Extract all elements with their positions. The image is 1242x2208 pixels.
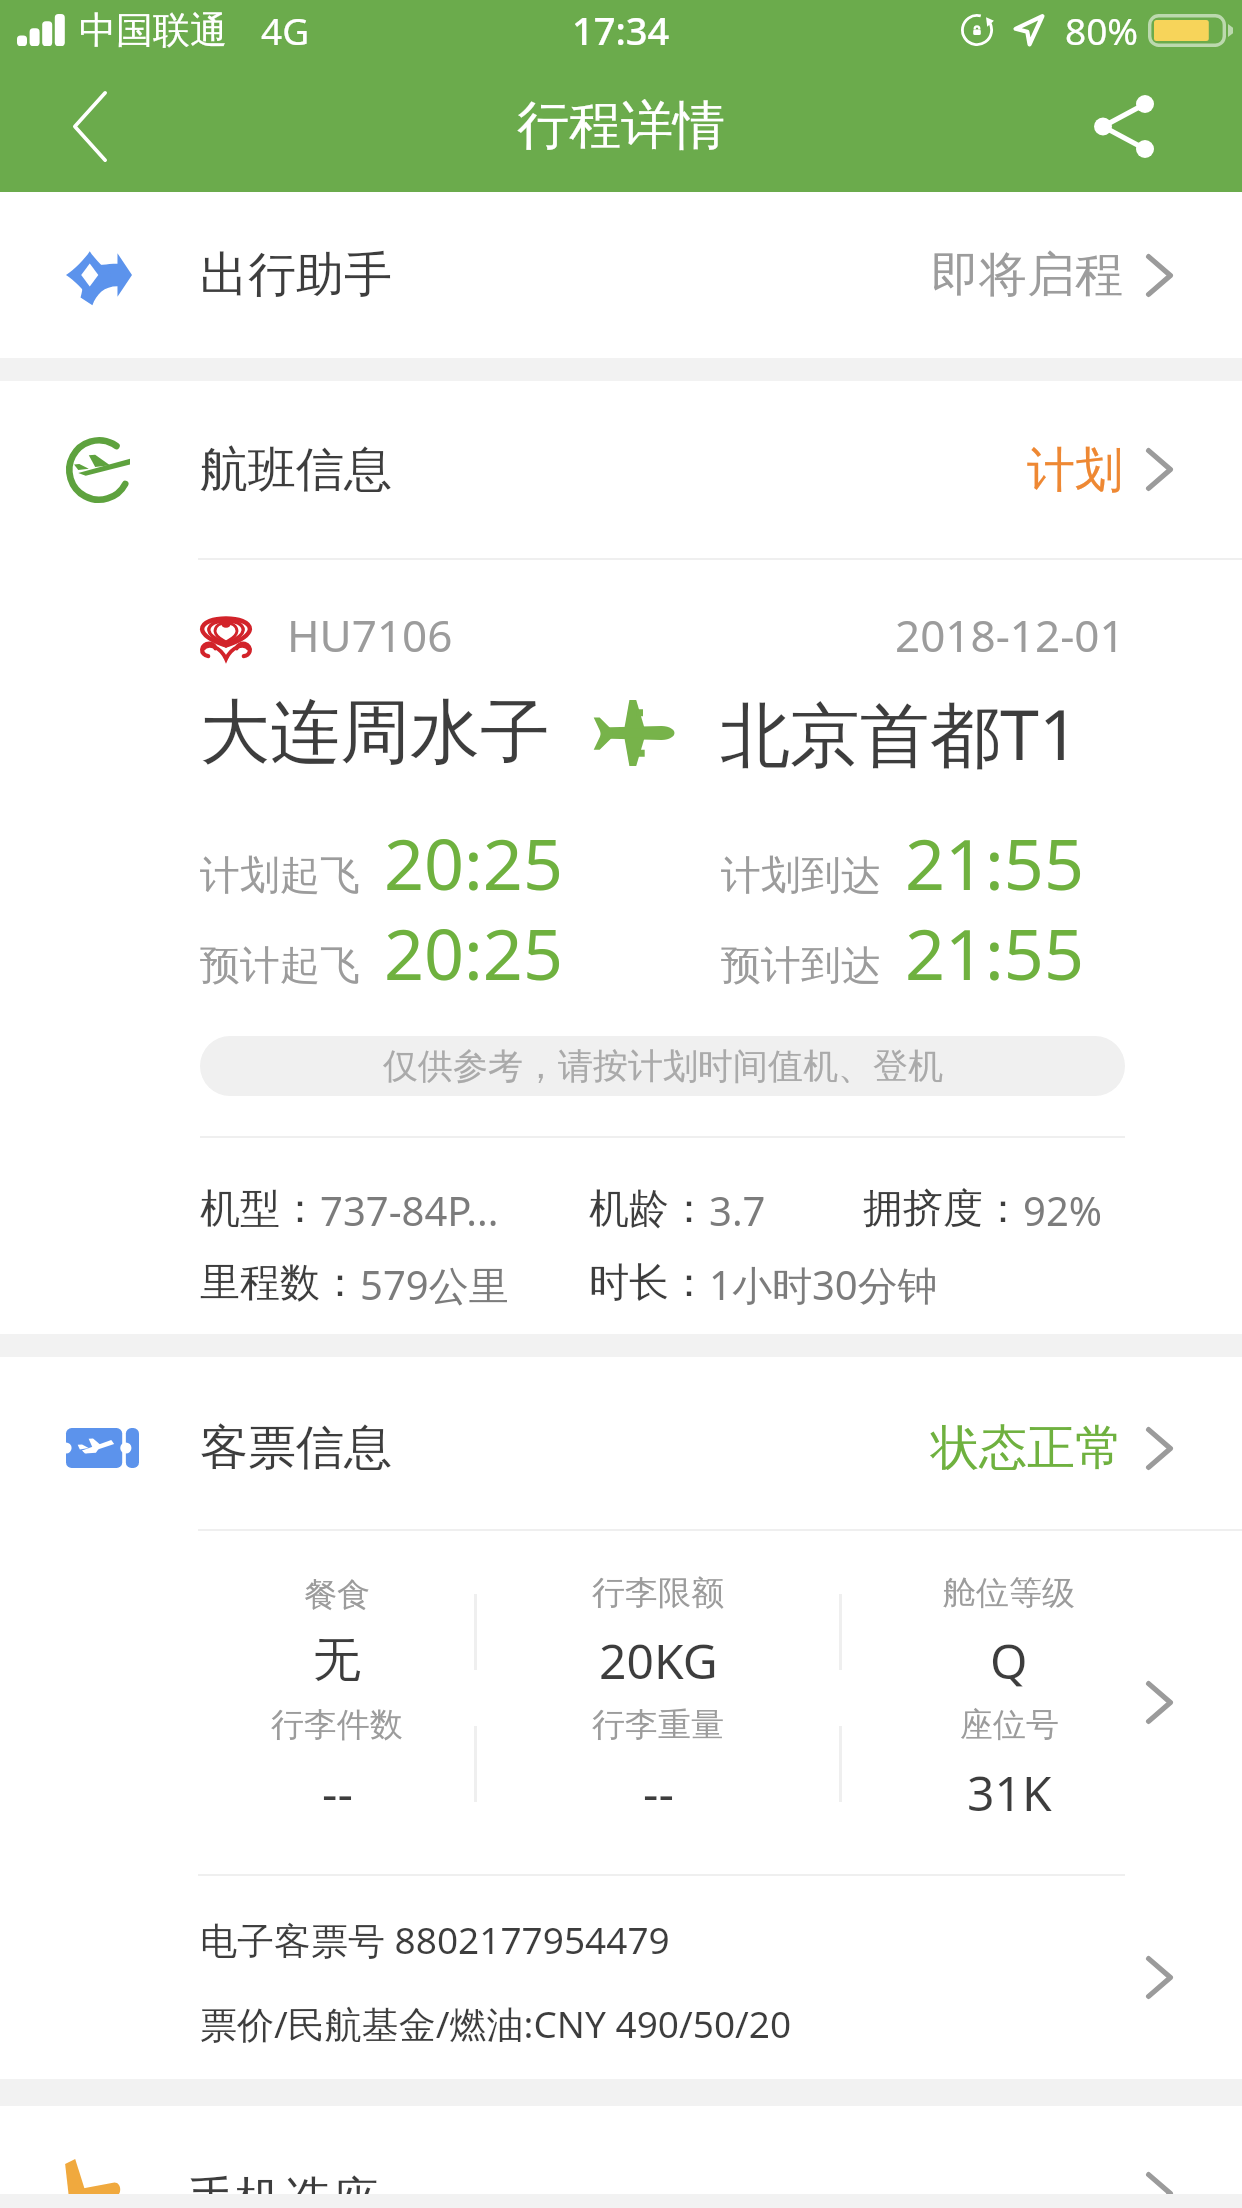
staticText: 1小时30分钟 (709, 1257, 938, 1312)
button[interactable]: 电子客票号 8802177954479 (200, 1876, 1242, 2079)
staticText: 仅供参考，请按计划时间值机、登机 (383, 1044, 943, 1088)
staticText: 舱位等级 (943, 1572, 1075, 1614)
staticText: 579公里 (360, 1257, 509, 1312)
staticText: 票价/民航基金/燃油:CNY 490/50/20 (200, 1998, 792, 2049)
staticText: 4G (261, 5, 310, 55)
staticText: 行李件数 (271, 1704, 403, 1746)
staticText: 餐食 (304, 1574, 370, 1616)
button[interactable]: 手机选座 (0, 2106, 1242, 2194)
button[interactable]: Back (0, 60, 180, 192)
staticText: 31K (967, 1760, 1052, 1825)
button[interactable]: 客票信息 (0, 1357, 1242, 1529)
staticText: 无 (313, 1630, 361, 1690)
staticText: 20KG (599, 1628, 718, 1693)
staticText: 92% (1023, 1183, 1102, 1237)
button[interactable]: 出行助手 (0, 192, 1242, 358)
staticText: 计划起飞 (200, 850, 360, 900)
staticText: 客票信息 (200, 1418, 392, 1478)
staticText: 拥挤度： (863, 1183, 1023, 1233)
button[interactable]: Share (1064, 60, 1242, 192)
button[interactable]: 航班信息 (0, 381, 1242, 558)
staticText: 行李限额 (592, 1572, 724, 1614)
staticText: 80% (1065, 5, 1139, 55)
staticText: 行李重量 (592, 1704, 724, 1746)
staticText: 预计起飞 (200, 940, 360, 990)
staticText: 20:25 (384, 905, 563, 995)
staticText: 预计到达 (721, 940, 881, 990)
staticText: 北京首都T1 (720, 685, 1079, 781)
staticText: 机龄： (589, 1183, 709, 1233)
staticText: 中国联通 (79, 7, 227, 54)
staticText: Q (990, 1628, 1028, 1693)
staticText: 状态正常 (931, 1418, 1123, 1478)
staticText: 即将启程 (931, 245, 1123, 305)
staticText: 大连周水子 (200, 689, 550, 777)
staticText: 里程数： (200, 1257, 360, 1307)
staticText: 座位号 (960, 1704, 1059, 1746)
staticText: 机型： (200, 1183, 320, 1233)
staticText: -- (643, 1760, 674, 1825)
staticText: 手机选座 (187, 2170, 379, 2208)
staticText: 计划 (1027, 440, 1123, 500)
staticText: 21:55 (905, 815, 1084, 905)
staticText: 17:34 (572, 4, 670, 56)
staticText: 2018-12-01 (895, 605, 1125, 665)
staticText: 737-84P... (320, 1183, 499, 1237)
staticText: 20:25 (384, 815, 563, 905)
staticText: HU7106 (287, 605, 453, 665)
staticText: 计划到达 (721, 850, 881, 900)
staticText: 行程详情 (517, 93, 725, 159)
staticText: 出行助手 (200, 245, 392, 305)
staticText: 时长： (589, 1257, 709, 1307)
staticText: 3.7 (709, 1183, 766, 1237)
staticText: 电子客票号 8802177954479 (200, 1914, 670, 1965)
staticText: -- (322, 1760, 353, 1825)
staticText: 21:55 (905, 905, 1084, 995)
staticText: 航班信息 (200, 440, 392, 500)
